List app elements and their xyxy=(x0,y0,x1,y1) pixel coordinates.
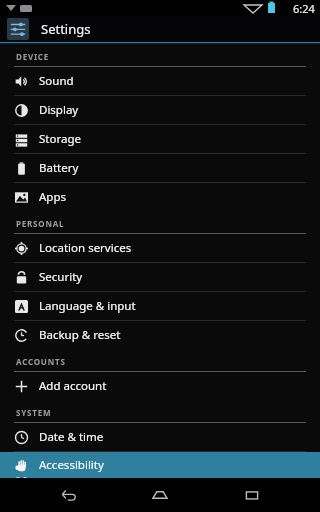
staticText: Security xyxy=(39,269,83,285)
button[interactable]: Accessibility xyxy=(0,452,320,478)
button[interactable]: Location services xyxy=(0,234,320,262)
staticText: Storage xyxy=(39,131,81,147)
staticText: Battery xyxy=(39,160,79,176)
staticText: Add account xyxy=(39,378,107,394)
staticText: ACCOUNTS xyxy=(16,356,66,367)
button[interactable]: Apps xyxy=(0,183,320,211)
button[interactable]: Language & input xyxy=(0,292,320,320)
staticText: DEVICE xyxy=(16,51,50,62)
staticText: Display xyxy=(39,102,79,118)
button[interactable]: Storage xyxy=(0,125,320,153)
button[interactable]: Backup & reset xyxy=(0,321,320,349)
staticText: Accessibility xyxy=(39,457,104,473)
staticText: Sound xyxy=(39,73,74,89)
staticText: Backup & reset xyxy=(39,327,121,343)
button[interactable]: Add account xyxy=(0,372,320,400)
button[interactable]: Back xyxy=(46,478,92,512)
button[interactable]: Display xyxy=(0,96,320,124)
staticText: Settings xyxy=(41,20,91,38)
staticText: Location services xyxy=(39,240,132,256)
staticText: Apps xyxy=(39,189,67,205)
staticText: Date & time xyxy=(39,429,104,445)
button[interactable]: Battery xyxy=(0,154,320,182)
button[interactable]: Recent apps xyxy=(229,478,275,512)
staticText: Language & input xyxy=(39,298,136,314)
button[interactable]: Sound xyxy=(0,67,320,95)
button[interactable]: Security xyxy=(0,263,320,291)
button[interactable]: Home xyxy=(137,478,183,512)
staticText: 6:24 xyxy=(293,1,315,16)
staticText: SYSTEM xyxy=(16,407,52,418)
button[interactable]: Date & time xyxy=(0,423,320,451)
staticText: PERSONAL xyxy=(16,218,65,229)
